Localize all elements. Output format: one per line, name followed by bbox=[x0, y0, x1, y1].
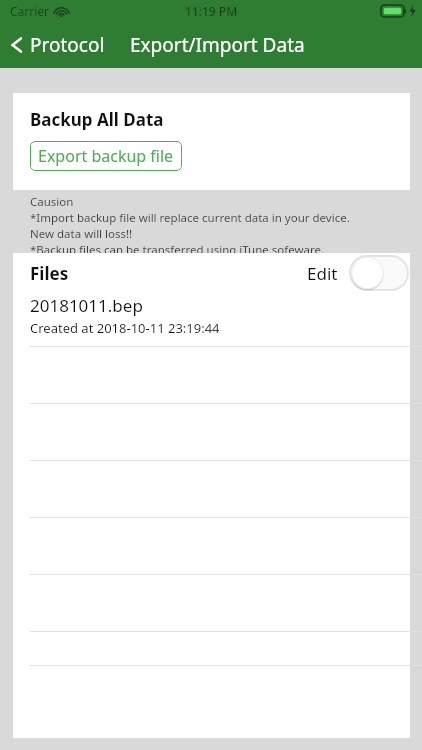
staticText: 20181011.bep bbox=[30, 294, 143, 317]
staticText: Backup All Data bbox=[30, 108, 164, 131]
button[interactable]: Edit mode toggle bbox=[348, 255, 410, 291]
staticText: New data will loss!! bbox=[30, 226, 133, 242]
button[interactable]: Protocol bbox=[0, 26, 113, 64]
staticText: Edit bbox=[307, 262, 338, 285]
staticText: Export/Import Data bbox=[130, 32, 305, 58]
staticText: Files bbox=[30, 262, 69, 285]
button[interactable]: Edit bbox=[301, 256, 344, 291]
staticText: *Backup files can be transferred using i… bbox=[30, 242, 325, 258]
staticText: Causion bbox=[30, 194, 74, 210]
staticText: *Import backup file will replace current… bbox=[30, 210, 350, 226]
staticText: Protocol bbox=[30, 32, 105, 58]
button[interactable]: Export backup file bbox=[30, 141, 182, 171]
staticText: Export backup file bbox=[38, 145, 174, 167]
staticText: Carrier bbox=[10, 3, 50, 19]
staticText: Created at 2018-10-11 23:19:44 bbox=[30, 319, 220, 337]
staticText: 11:19 PM bbox=[185, 3, 238, 19]
